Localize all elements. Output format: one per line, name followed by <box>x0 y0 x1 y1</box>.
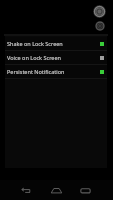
staticText: Voice on Lock Screen <box>7 54 61 61</box>
button[interactable]: Voice on Lock Screen <box>5 51 107 64</box>
staticText: Persistent Notification <box>7 68 65 75</box>
button[interactable]: Back <box>18 182 34 198</box>
staticText: Shake on Lock Screen <box>7 40 63 47</box>
button[interactable]: Persistent Notification <box>5 65 107 78</box>
button[interactable]: Record <box>93 5 106 18</box>
button[interactable]: Home <box>48 182 64 198</box>
button[interactable]: Shake on Lock Screen <box>5 37 107 50</box>
button[interactable]: Settings <box>95 21 105 31</box>
button[interactable]: Recent apps <box>77 182 93 198</box>
